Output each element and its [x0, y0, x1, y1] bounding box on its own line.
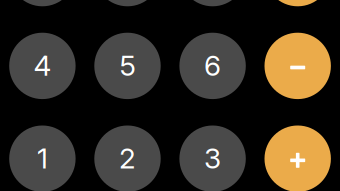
button[interactable]: 5: [94, 33, 161, 99]
staticText: 1: [37, 141, 48, 175]
staticText: 4: [33, 49, 51, 82]
staticText: 3: [204, 141, 221, 175]
button[interactable]: Multiply: [264, 0, 331, 6]
button[interactable]: 4: [9, 33, 76, 99]
button[interactable]: 3: [179, 125, 246, 191]
button[interactable]: Minus: [264, 33, 331, 99]
staticText: 6: [204, 49, 221, 82]
button[interactable]: 8: [94, 0, 161, 6]
button[interactable]: 1: [9, 125, 76, 191]
button[interactable]: 9: [179, 0, 246, 6]
staticText: 2: [119, 141, 136, 175]
button[interactable]: Plus: [264, 125, 331, 191]
staticText: 5: [119, 49, 135, 82]
button[interactable]: 6: [179, 33, 246, 99]
button[interactable]: 7: [9, 0, 76, 6]
button[interactable]: 2: [94, 125, 161, 191]
